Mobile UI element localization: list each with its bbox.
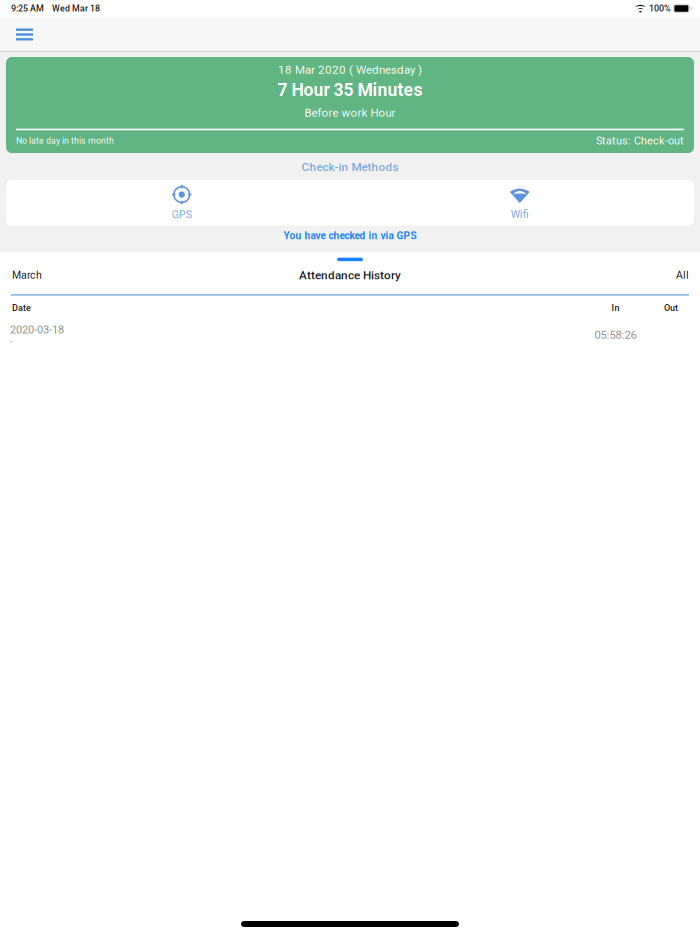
staticText: Status: Check-out: [596, 134, 684, 147]
staticText: Check-in Methods: [301, 160, 398, 174]
button[interactable]: Menu: [8, 17, 41, 51]
staticText: No late day in this month: [16, 135, 114, 146]
staticText: GPS: [172, 208, 192, 221]
staticText: 05:58:26: [594, 328, 636, 341]
staticText: Wed Mar 18: [52, 3, 100, 14]
staticText: 9:25 AM: [11, 3, 44, 14]
staticText: In: [611, 303, 619, 313]
staticText: Date: [12, 303, 31, 313]
button[interactable]: All: [665, 265, 700, 285]
staticText: 7 Hour 35 Minutes: [277, 80, 422, 100]
staticText: 18 Mar 2020 ( Wednesday ): [278, 63, 422, 77]
staticText: Wifi: [511, 208, 529, 221]
staticText: Attendance History: [299, 268, 401, 282]
staticText: -: [10, 336, 12, 346]
staticText: 2020-03-18: [10, 323, 64, 336]
button[interactable]: March: [0, 265, 54, 285]
button[interactable]: GPS: [11, 180, 352, 226]
staticText: 100%: [649, 3, 671, 14]
staticText: Out: [664, 303, 678, 313]
staticText: Before work Hour: [304, 106, 395, 120]
staticText: All: [676, 269, 689, 281]
staticText: You have checked in via GPS: [283, 230, 416, 242]
button[interactable]: Wifi: [352, 180, 694, 226]
button[interactable]: You have checked in via GPS: [0, 226, 700, 253]
staticText: March: [12, 269, 42, 281]
